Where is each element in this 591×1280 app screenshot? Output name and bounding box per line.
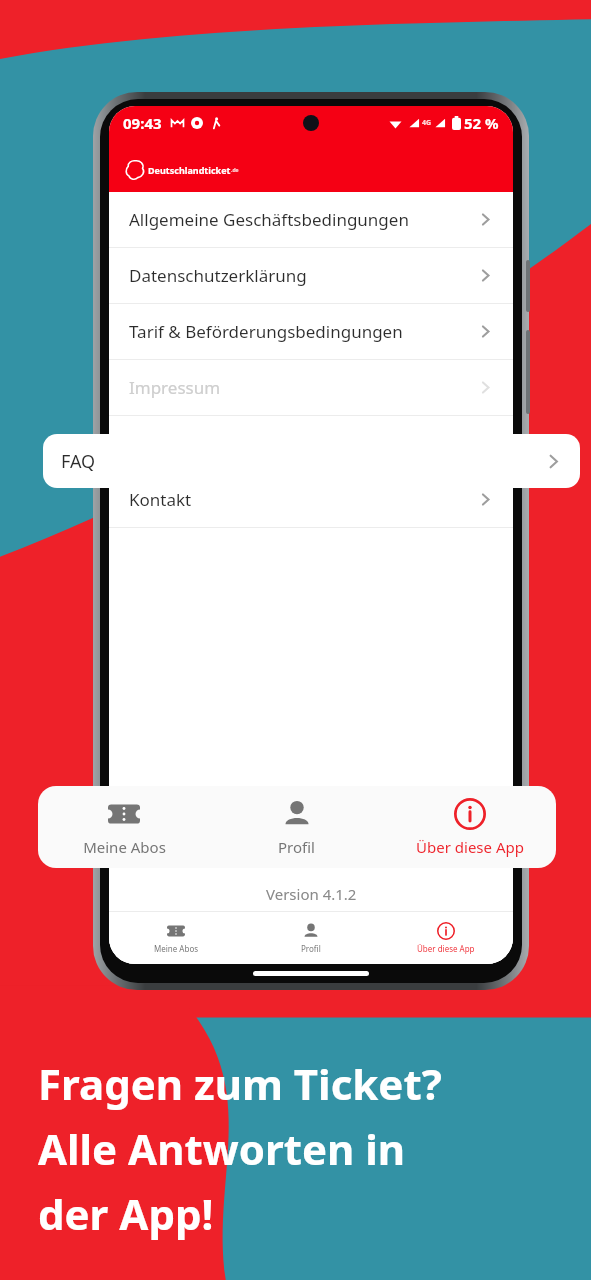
staticText: Allgemeine Geschäftsbedingungen xyxy=(129,208,409,231)
button[interactable]: Über diese App xyxy=(378,912,513,964)
staticText: FAQ xyxy=(61,449,96,474)
staticText: Meine Abos xyxy=(154,943,199,954)
button[interactable]: Tarif & Beförderungsbedingungen xyxy=(109,304,513,359)
button[interactable]: Meine Abos xyxy=(109,912,243,964)
staticText: Alle Antworten in xyxy=(38,1120,406,1177)
staticText: 52 % xyxy=(464,113,499,133)
button[interactable]: Über diese App xyxy=(383,786,556,868)
button[interactable]: Impressum xyxy=(109,360,513,415)
staticText: Kontakt xyxy=(129,488,192,511)
other: Über diese App xyxy=(454,798,486,830)
other: Meine Abos xyxy=(167,922,185,940)
staticText: Meine Abos xyxy=(83,837,166,857)
staticText: Fragen zum Ticket? xyxy=(38,1055,442,1112)
other: Meine Abos xyxy=(108,798,140,830)
staticText: Deutschlandticket xyxy=(148,164,231,176)
staticText: 4G xyxy=(422,118,432,128)
staticText: .de xyxy=(231,167,239,174)
button[interactable]: FAQ xyxy=(43,434,580,488)
staticText: der App! xyxy=(38,1185,214,1242)
staticText: Impressum xyxy=(129,376,221,399)
button[interactable]: Profil xyxy=(210,786,383,868)
button[interactable]: Allgemeine Geschäftsbedingungen xyxy=(109,192,513,247)
button[interactable]: Datenschutzerklärung xyxy=(109,248,513,303)
staticText: Profil xyxy=(278,837,315,857)
staticText: 09:43 xyxy=(123,113,162,133)
button[interactable]: Meine Abos xyxy=(38,786,210,868)
button[interactable]: Profil xyxy=(243,912,378,964)
staticText: Tarif & Beförderungsbedingungen xyxy=(129,320,403,343)
staticText: Version 4.1.2 xyxy=(266,884,357,904)
staticText: Profil xyxy=(301,943,321,954)
other: Über diese App xyxy=(437,922,455,940)
button[interactable]: Kontakt xyxy=(109,472,513,527)
other: Profil xyxy=(281,798,313,830)
staticText: Über diese App xyxy=(417,943,475,954)
staticText: Datenschutzerklärung xyxy=(129,264,307,287)
other: Profil xyxy=(302,922,320,940)
staticText: Über diese App xyxy=(416,837,524,857)
